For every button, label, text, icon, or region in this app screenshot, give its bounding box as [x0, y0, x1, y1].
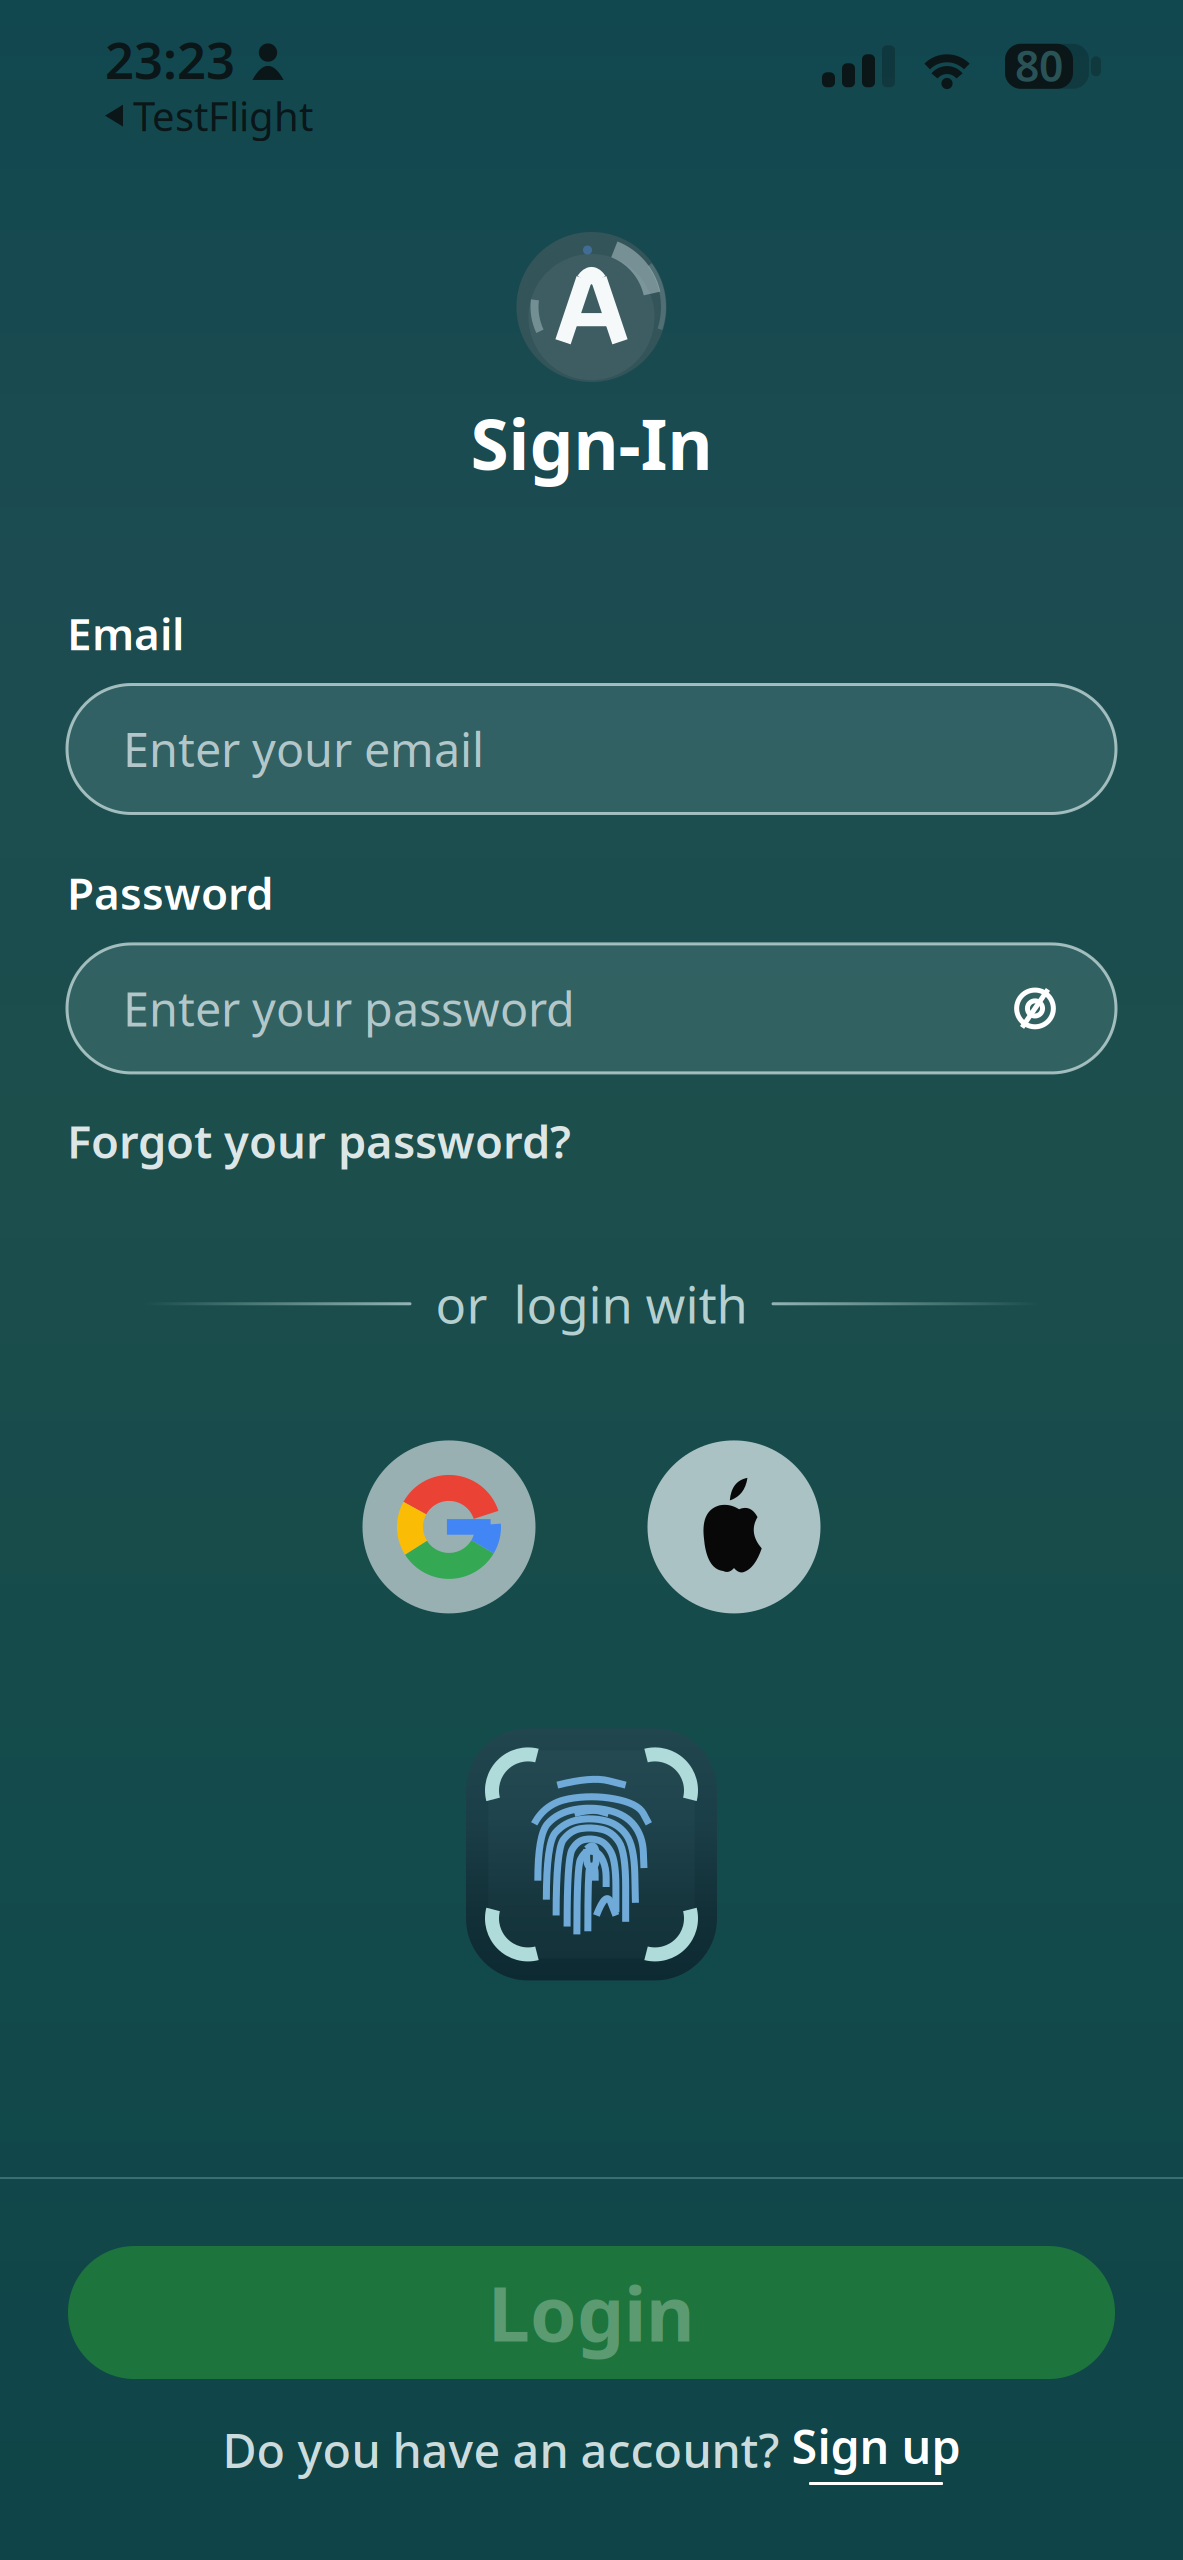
- button[interactable]: Forgot your password?: [67, 1111, 571, 1171]
- button[interactable]: Sign in with fingerprint: [466, 1728, 717, 1980]
- staticText: Enter your email: [123, 718, 484, 780]
- staticText: Login: [488, 2263, 695, 2362]
- button[interactable]: Enter your email: [67, 684, 1116, 813]
- staticText: Sign up: [791, 2415, 960, 2477]
- staticText: Password: [67, 863, 274, 922]
- staticText: 23:23: [105, 26, 235, 93]
- staticText: Email: [67, 604, 184, 662]
- staticText: Enter your password: [123, 977, 575, 1039]
- staticText: 80: [1015, 37, 1063, 94]
- button[interactable]: Enter your password: [67, 944, 1116, 1073]
- button[interactable]: Sign in with Google: [362, 1440, 535, 1613]
- staticText: or login with: [435, 1270, 747, 1337]
- button[interactable]: Sign in with Apple: [647, 1440, 820, 1613]
- staticText: Do you have an account?: [222, 2419, 779, 2481]
- staticText: TestFlight: [133, 89, 313, 142]
- staticText: Sign-In: [470, 397, 712, 489]
- button[interactable]: Do you have an account?: [222, 2415, 960, 2485]
- staticText: Forgot your password?: [67, 1111, 571, 1171]
- button[interactable]: Login: [68, 2246, 1115, 2379]
